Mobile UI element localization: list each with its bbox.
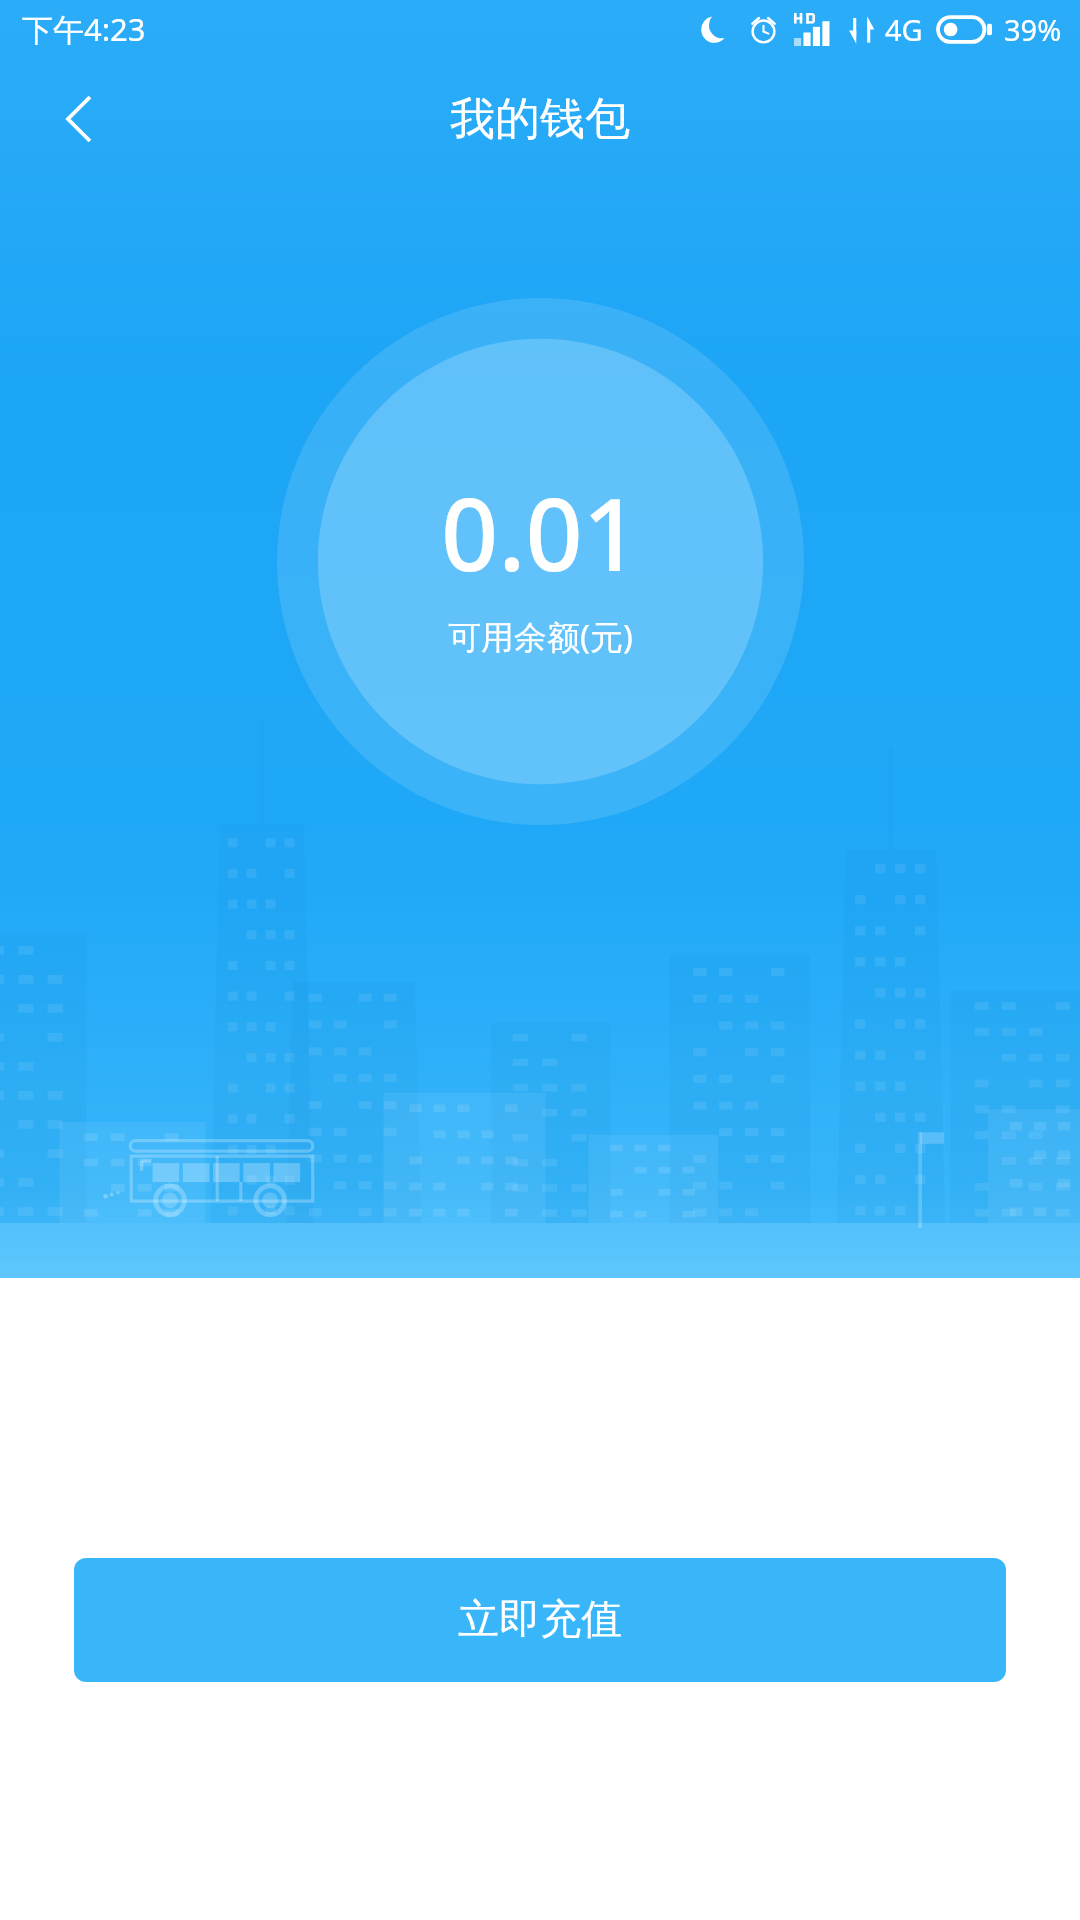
staticText: 我的钱包 [450, 91, 630, 148]
button[interactable]: Back [24, 64, 134, 174]
staticText: 39% [1004, 10, 1062, 49]
staticText: 立即充值 [458, 1594, 622, 1646]
staticText: 4G [885, 10, 923, 49]
staticText: 可用余额(元) [448, 614, 633, 659]
staticText: 下午4:23 [22, 8, 146, 50]
staticText: 0.01 [441, 464, 640, 600]
button[interactable]: 立即充值 [74, 1558, 1006, 1682]
